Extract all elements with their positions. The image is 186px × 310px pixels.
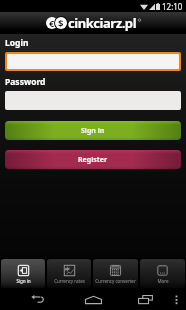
button[interactable]: Register	[5, 150, 181, 169]
button[interactable]: Currency rates	[47, 259, 91, 288]
button[interactable]: Recent apps	[134, 289, 156, 310]
staticText: Login	[5, 37, 29, 49]
staticText: Sign in	[81, 126, 105, 136]
button[interactable]	[5, 91, 181, 110]
staticText: $	[58, 17, 64, 29]
staticText: cinkciarz.pl	[68, 14, 137, 32]
button[interactable]: Sign in	[1, 259, 45, 288]
staticText: More	[157, 278, 169, 284]
staticText: Sign in	[16, 278, 31, 284]
button[interactable]: More options	[170, 289, 182, 310]
button[interactable]: Sign in	[5, 121, 181, 140]
button[interactable]: Back	[26, 289, 48, 310]
staticText: Currency converter	[95, 278, 136, 284]
staticText: Register	[78, 155, 108, 165]
staticText: Currency rates	[54, 278, 85, 284]
button[interactable]: Currency converter	[93, 259, 138, 288]
button[interactable]: Home	[82, 289, 104, 310]
button[interactable]: More	[140, 259, 185, 288]
staticText: Password	[5, 76, 46, 88]
staticText: €	[49, 17, 55, 29]
staticText: 12:10	[162, 1, 183, 12]
